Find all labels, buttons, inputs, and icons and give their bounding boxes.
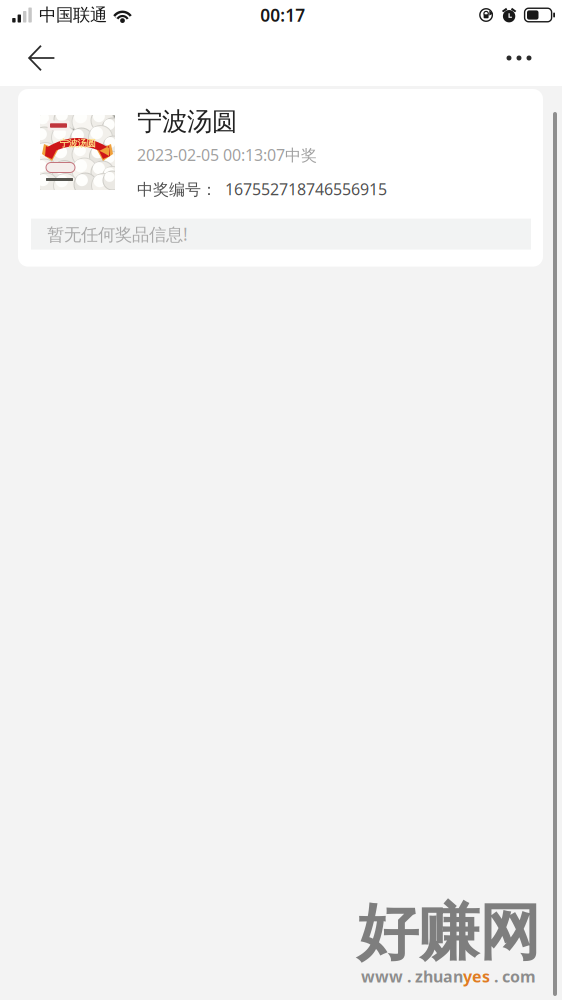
staticText: 2023-02-05 00:13:07中奖 (137, 144, 317, 165)
staticText: 中国联通 (39, 4, 107, 26)
staticText: yes (463, 966, 490, 987)
staticText: www . zhuan (361, 966, 463, 987)
staticText: 中奖编号： 167552718746556915 (137, 178, 387, 200)
button[interactable]: 返回 (15, 34, 69, 82)
staticText: 暂无任何奖品信息! (47, 223, 188, 246)
staticText: 00:17 (260, 3, 305, 26)
staticText: 宁波汤圆 (137, 106, 237, 137)
staticText: 好赚网 (357, 895, 540, 970)
staticText: 宁波汤圆 (59, 138, 95, 149)
staticText: . com (490, 966, 536, 987)
button[interactable]: 更多 (492, 34, 546, 82)
